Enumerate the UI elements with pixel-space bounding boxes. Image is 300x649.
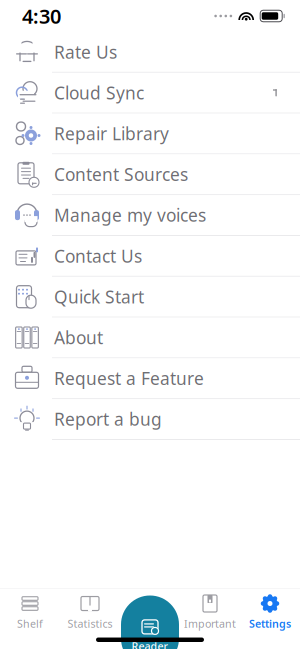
staticText: Rate Us (54, 40, 117, 63)
staticText: Settings (249, 616, 291, 631)
button[interactable]: Content Sources (0, 154, 300, 194)
button[interactable]: Rate Us (0, 32, 300, 72)
staticText: Reader (131, 639, 168, 649)
staticText: Statistics (67, 616, 112, 631)
staticText: Cloud Sync (54, 81, 144, 104)
button[interactable]: Settings (240, 589, 300, 636)
staticText: Content Sources (54, 163, 188, 186)
button[interactable]: Contact Us (0, 236, 300, 276)
staticText: About (54, 326, 103, 349)
button[interactable]: Cloud Sync (0, 73, 300, 113)
button[interactable]: Important (180, 589, 240, 636)
button[interactable]: Request a Feature (0, 358, 300, 398)
button[interactable]: Report a bug (0, 399, 300, 439)
button[interactable]: Shelf (0, 589, 60, 636)
staticText: Request a Feature (54, 367, 204, 390)
button[interactable]: Statistics (60, 589, 120, 636)
staticText: Important (184, 616, 236, 631)
staticText: Manage my voices (54, 204, 206, 227)
button[interactable]: Repair Library (0, 114, 300, 153)
staticText: 4:30 (22, 3, 61, 29)
staticText: Quick Start (54, 285, 144, 308)
button[interactable]: Reader (121, 595, 179, 649)
staticText: Shelf (17, 616, 43, 631)
button[interactable]: Manage my voices (0, 195, 300, 235)
staticText: Contact Us (54, 244, 142, 267)
staticText: Report a bug (54, 408, 162, 431)
staticText: Repair Library (54, 122, 169, 145)
button[interactable]: About (0, 318, 300, 357)
button[interactable]: Quick Start (0, 277, 300, 317)
